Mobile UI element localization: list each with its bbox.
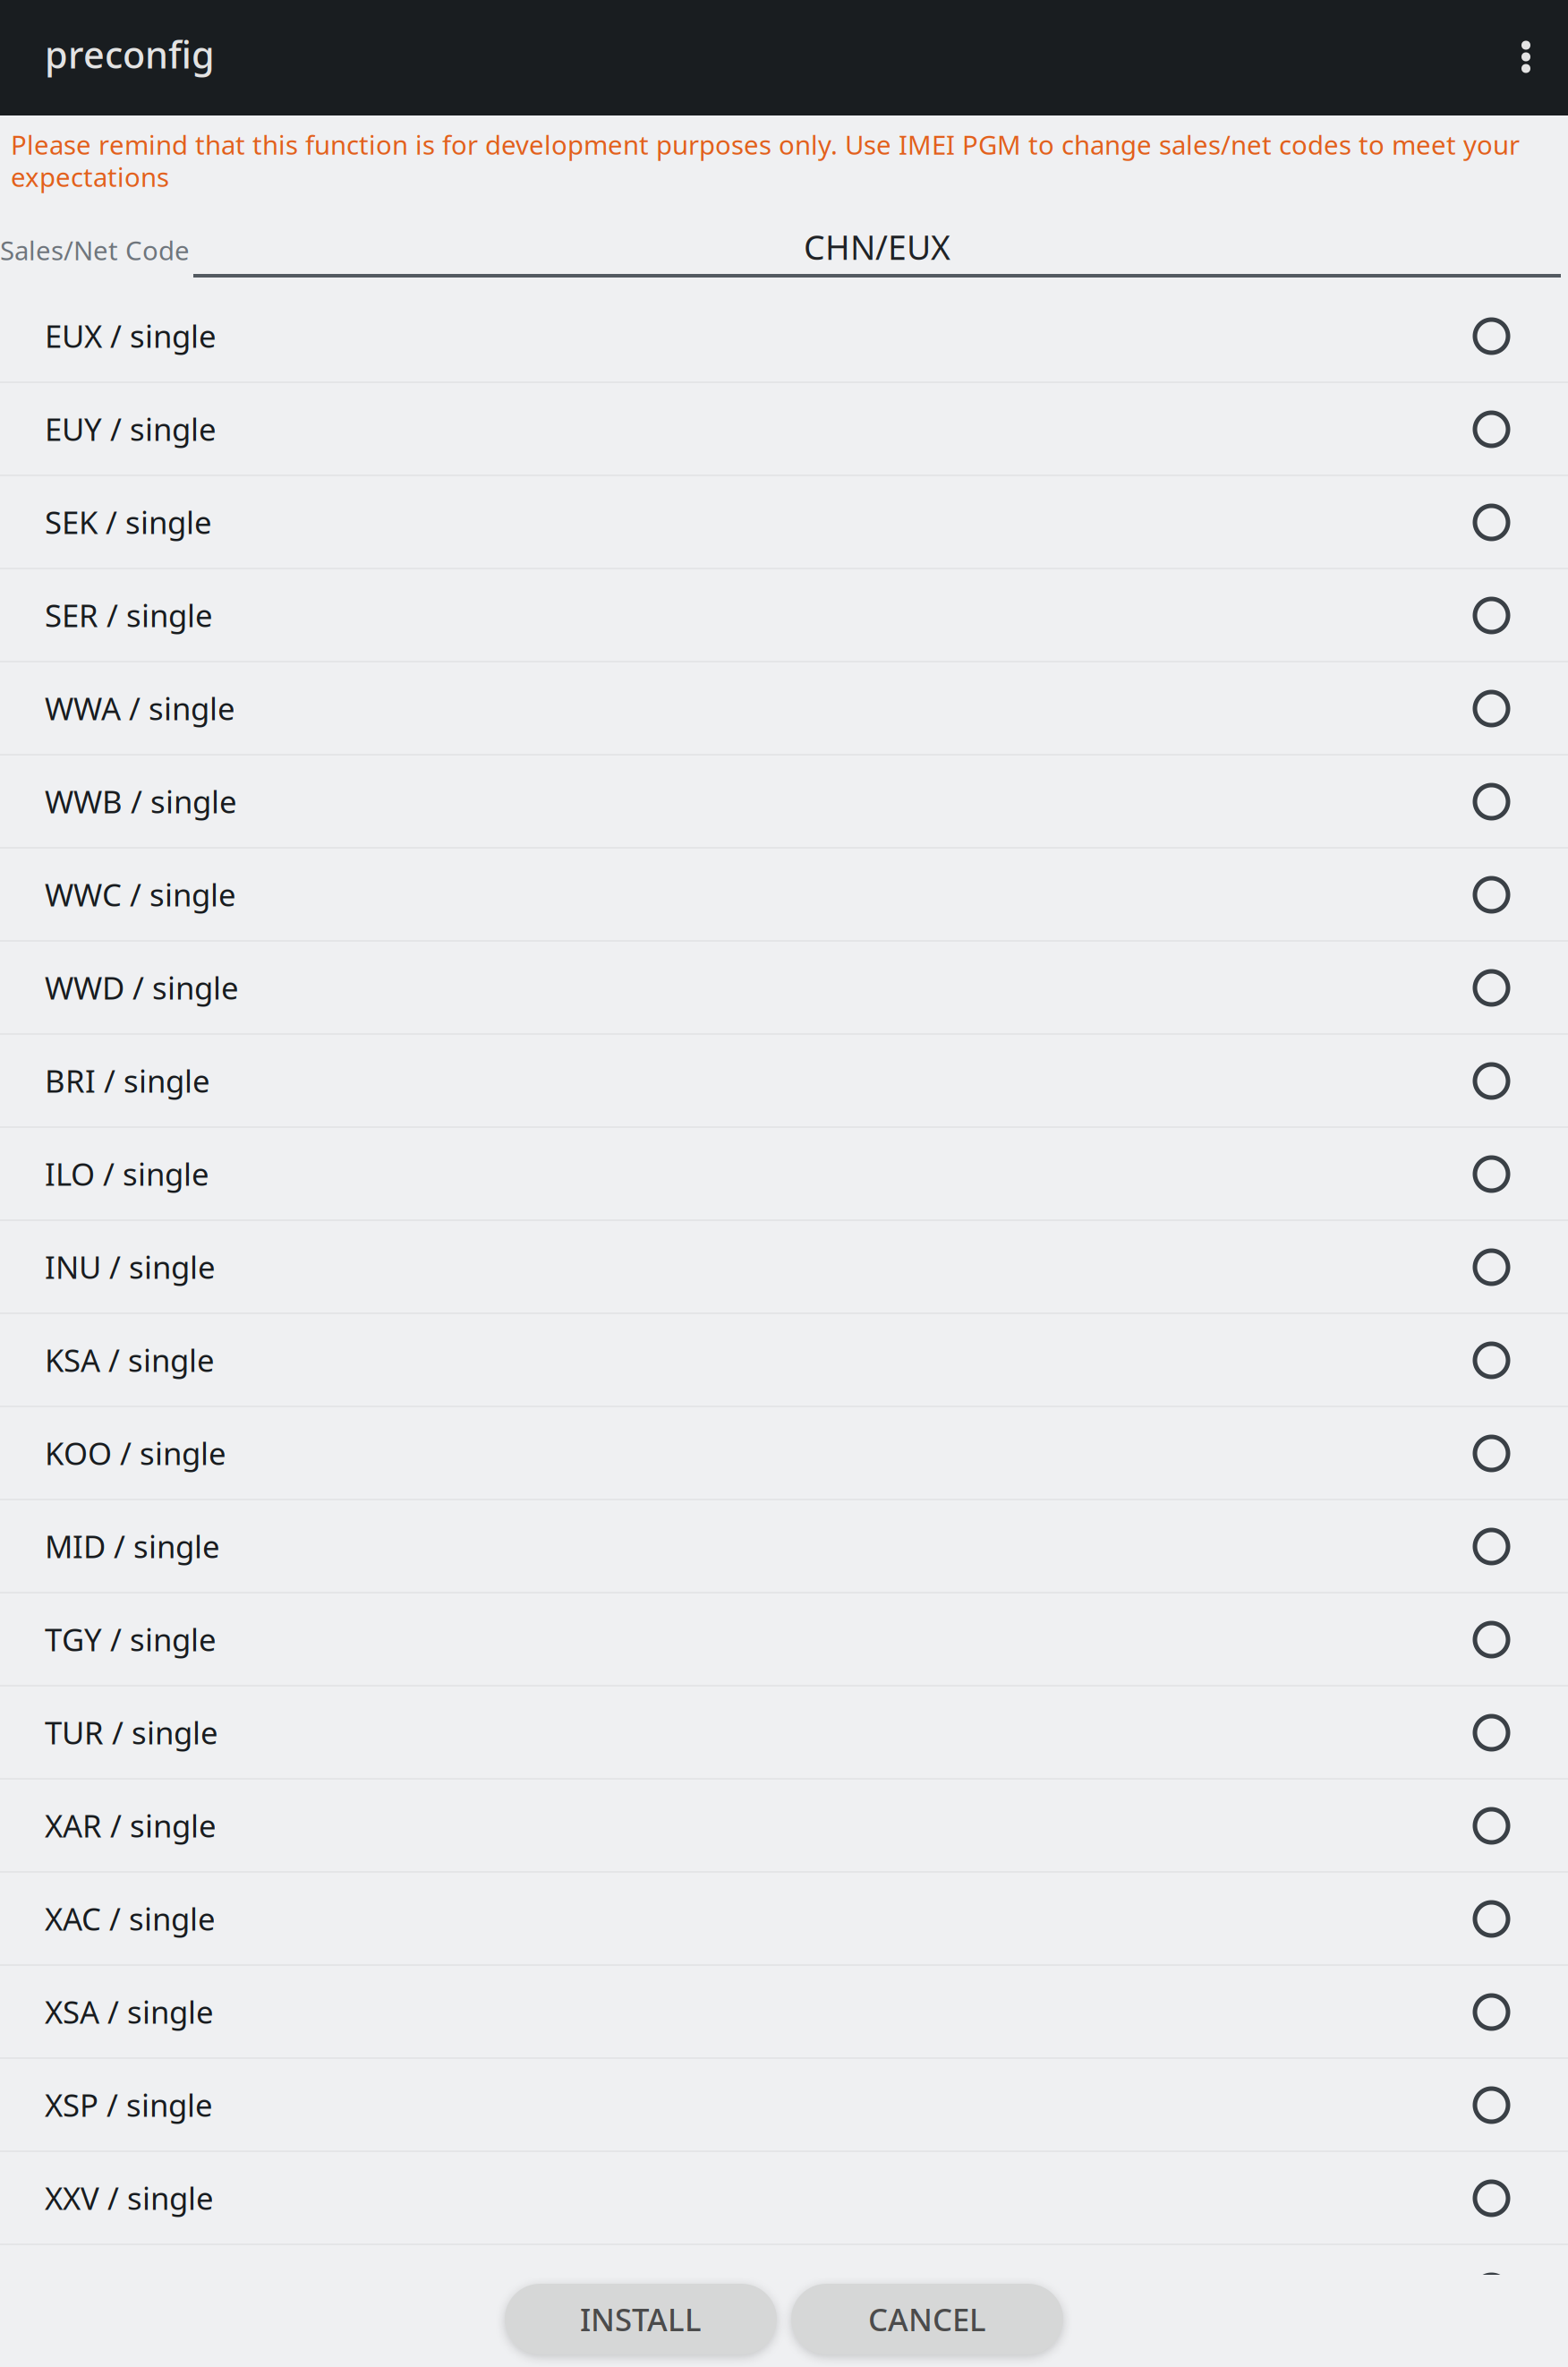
button[interactable]: SEK / single [0, 476, 1568, 569]
button[interactable]: XAC / single [0, 1873, 1568, 1966]
button[interactable]: XXV / single [0, 2152, 1568, 2245]
button[interactable]: More options [1484, 0, 1568, 115]
button[interactable]: MID / single [0, 1500, 1568, 1594]
staticText: Sales/Net Code [0, 233, 190, 268]
button[interactable]: XEU / single [0, 2245, 1568, 2338]
button[interactable]: ILO / single [0, 1128, 1568, 1221]
button[interactable]: TUR / single [0, 1687, 1568, 1780]
staticText: EUY / single [45, 408, 217, 449]
staticText: XSP / single [45, 2084, 213, 2125]
button[interactable]: KOO / single [0, 1407, 1568, 1500]
button[interactable]: XSP / single [0, 2059, 1568, 2152]
staticText: BRI / single [45, 1060, 210, 1101]
staticText: WWC / single [45, 874, 236, 915]
staticText: WWA / single [45, 688, 235, 729]
staticText: SER / single [45, 594, 213, 636]
button[interactable]: BRI / single [0, 1035, 1568, 1128]
button[interactable]: WWB / single [0, 756, 1568, 849]
staticText: XAR / single [45, 1805, 217, 1846]
button[interactable]: XSA / single [0, 1966, 1568, 2059]
staticText: CHN/EUX [804, 225, 950, 269]
staticText: WWB / single [45, 781, 237, 822]
staticText: preconfig [45, 30, 215, 79]
button[interactable]: SER / single [0, 569, 1568, 662]
staticText: TGY / single [45, 1619, 217, 1660]
staticText: KOO / single [45, 1432, 226, 1474]
button[interactable]: CANCEL [791, 2284, 1063, 2354]
button[interactable]: EUY / single [0, 383, 1568, 476]
button[interactable]: WWC / single [0, 849, 1568, 942]
staticText: XSA / single [45, 1991, 214, 2032]
staticText: XAC / single [45, 1898, 216, 1939]
button[interactable]: EUX / single [0, 290, 1568, 383]
staticText: Please remind that this function is for … [11, 127, 1520, 194]
button[interactable]: WWD / single [0, 942, 1568, 1035]
staticText: KSA / single [45, 1339, 215, 1380]
staticText: INSTALL [580, 2299, 702, 2340]
button[interactable]: INSTALL [505, 2284, 777, 2354]
button[interactable]: TGY / single [0, 1594, 1568, 1687]
staticText: INU / single [45, 1246, 216, 1287]
staticText: CANCEL [868, 2299, 986, 2340]
staticText: ILO / single [45, 1153, 209, 1194]
button[interactable]: WWA / single [0, 662, 1568, 756]
button[interactable]: XAR / single [0, 1780, 1568, 1873]
staticText: SEK / single [45, 501, 212, 543]
staticText: TUR / single [45, 1712, 218, 1753]
staticText: EUX / single [45, 315, 217, 356]
staticText: MID / single [45, 1525, 220, 1567]
button[interactable]: CHN/EUX [193, 225, 1561, 295]
staticText: WWD / single [45, 967, 239, 1008]
button[interactable]: KSA / single [0, 1314, 1568, 1407]
staticText: XXV / single [45, 2177, 214, 2218]
button[interactable]: INU / single [0, 1221, 1568, 1314]
